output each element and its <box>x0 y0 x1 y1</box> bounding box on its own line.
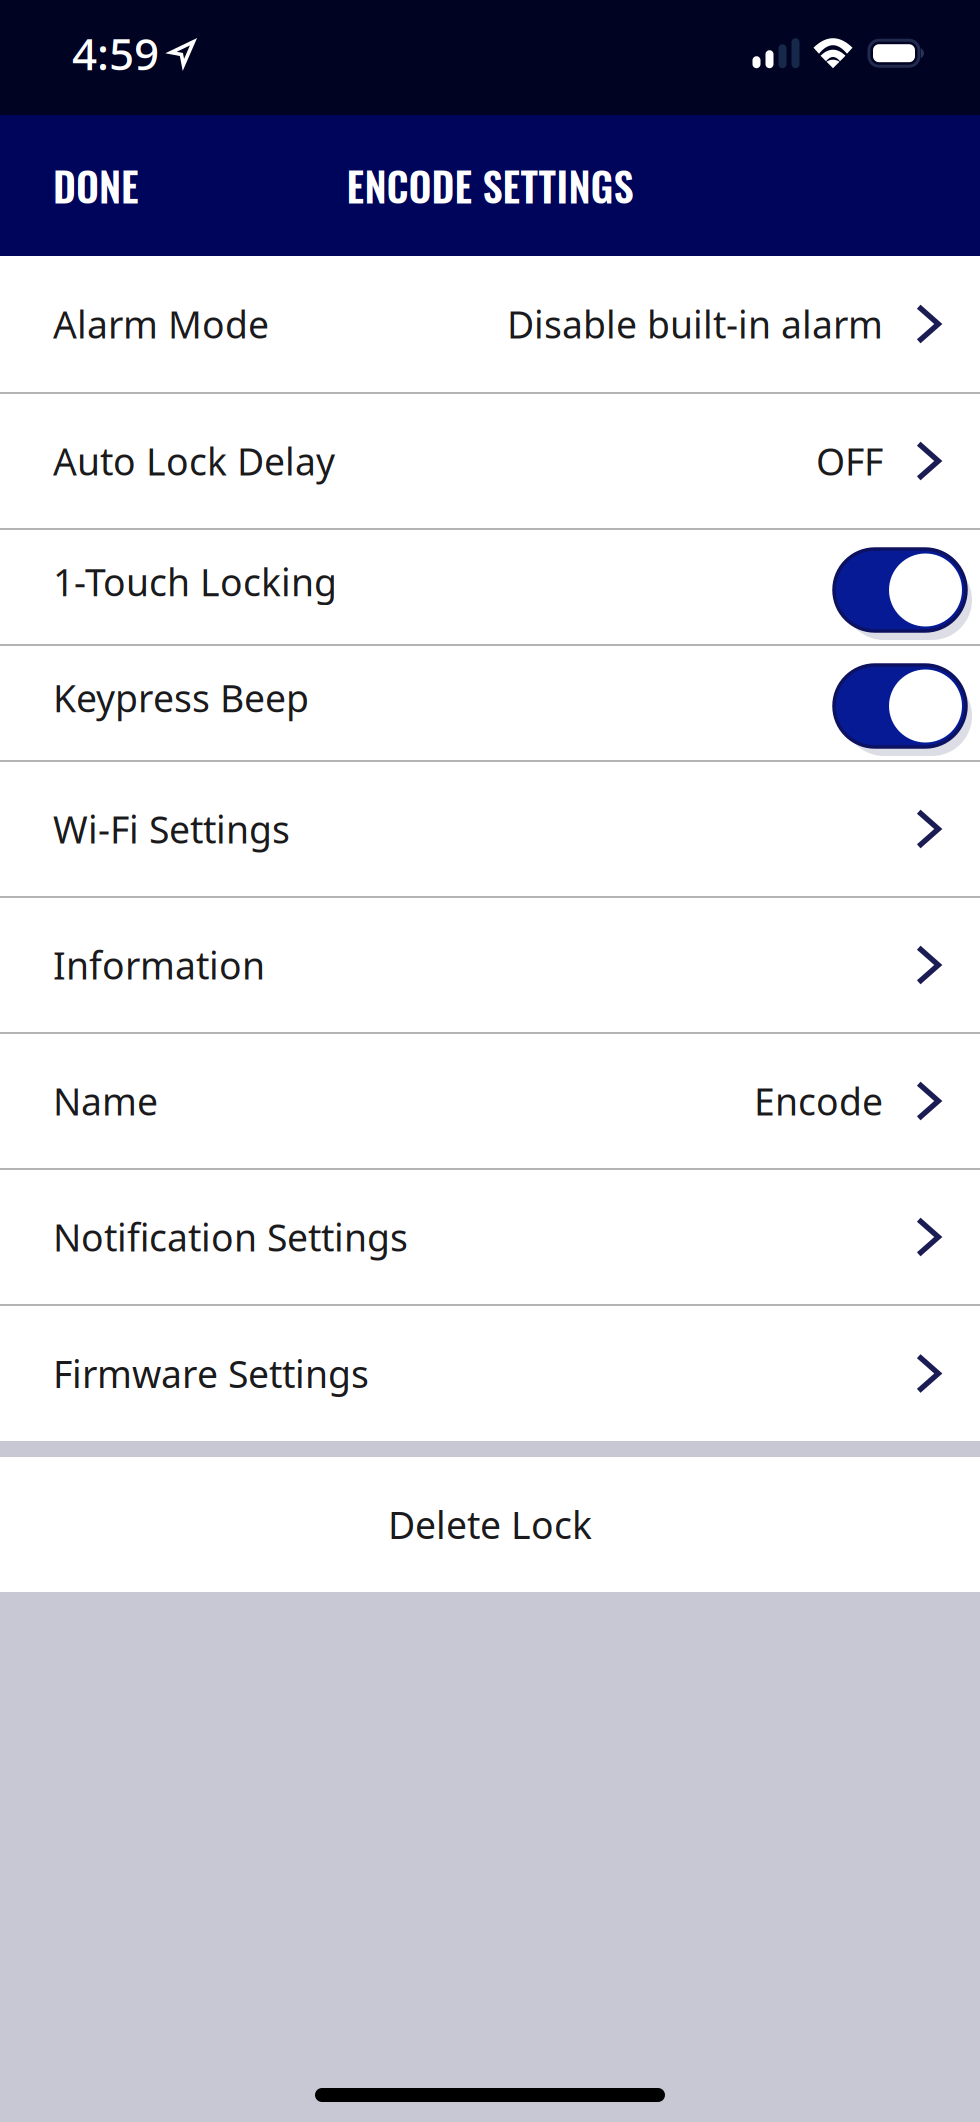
staticText: Notification Settings <box>53 1212 408 1262</box>
button[interactable]: Auto Lock Delay <box>0 394 980 530</box>
button[interactable]: Alarm Mode <box>0 256 980 394</box>
button[interactable]: Notification Settings <box>0 1170 980 1306</box>
staticText: ENCODE SETTINGS <box>346 156 633 215</box>
staticText: Wi-Fi Settings <box>53 804 290 854</box>
staticText: OFF <box>816 436 883 486</box>
button[interactable]: Delete Lock <box>0 1457 980 1592</box>
button[interactable]: DONE <box>0 130 169 241</box>
staticText: 1-Touch Locking <box>53 557 337 607</box>
staticText: Keypress Beep <box>53 673 309 723</box>
staticText: 4:59 <box>72 24 159 82</box>
staticText: Auto Lock Delay <box>53 436 335 486</box>
staticText: Information <box>53 940 265 990</box>
staticText: Disable built-in alarm <box>507 299 883 349</box>
button[interactable]: 1-Touch Locking <box>0 530 980 646</box>
staticText: Alarm Mode <box>53 299 269 349</box>
button[interactable]: Firmware Settings <box>0 1306 980 1441</box>
button[interactable]: Name <box>0 1034 980 1170</box>
button[interactable]: Keypress Beep <box>0 646 980 762</box>
staticText: Encode <box>754 1076 883 1126</box>
staticText: Delete Lock <box>388 1500 592 1549</box>
staticText: Firmware Settings <box>53 1349 369 1398</box>
button[interactable]: Information <box>0 898 980 1034</box>
staticText: DONE <box>53 156 139 215</box>
staticText: Name <box>53 1076 158 1126</box>
button[interactable]: Wi-Fi Settings <box>0 762 980 898</box>
